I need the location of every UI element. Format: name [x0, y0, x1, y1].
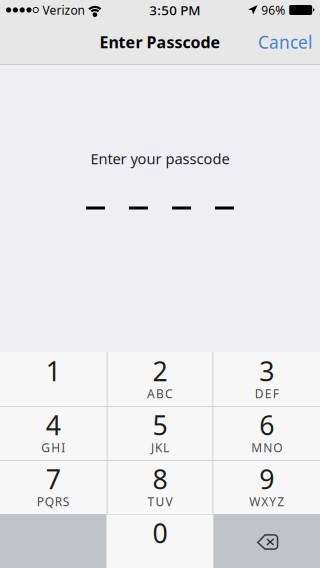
staticText: 3	[259, 353, 274, 389]
button[interactable]: 6	[213, 406, 320, 460]
button[interactable]: 1	[0, 352, 107, 406]
button[interactable]: 8	[107, 460, 213, 514]
staticText: Z	[277, 493, 284, 509]
staticText: N	[263, 439, 272, 455]
button[interactable]: 3	[213, 352, 320, 406]
staticText: R	[55, 493, 62, 509]
staticText: B	[156, 385, 164, 401]
staticText: C	[165, 385, 173, 401]
button[interactable]: 5	[107, 406, 213, 460]
staticText: 8	[152, 461, 167, 497]
staticText: J	[151, 439, 154, 455]
staticText: 9	[259, 461, 274, 497]
button[interactable]: 4	[0, 406, 107, 460]
staticText: K	[155, 439, 162, 455]
staticText: Q	[45, 493, 54, 509]
button[interactable]: 0	[107, 514, 213, 568]
staticText: T	[147, 493, 154, 509]
staticText: P	[37, 493, 44, 509]
staticText: 4	[46, 407, 61, 443]
button[interactable]: Cancel	[258, 20, 320, 64]
staticText: 6	[259, 407, 274, 443]
staticText: V	[165, 493, 172, 509]
staticText: O	[273, 439, 282, 455]
staticText: Enter Passcode	[99, 31, 220, 53]
staticText: M	[251, 439, 262, 455]
staticText: 3:50 PM	[149, 1, 200, 19]
staticText: Verizon	[42, 2, 84, 18]
staticText: 7	[46, 461, 61, 497]
staticText: Cancel	[258, 30, 312, 53]
staticText: D	[255, 385, 264, 401]
staticText: 0	[152, 515, 167, 551]
staticText: F	[273, 385, 279, 401]
staticText: 96%	[261, 2, 285, 18]
staticText: X	[261, 493, 268, 509]
staticText: E	[265, 385, 272, 401]
button[interactable]: 2	[107, 352, 213, 406]
staticText: W	[249, 493, 260, 509]
button[interactable]: Delete	[213, 514, 320, 568]
staticText: 5	[152, 407, 167, 443]
staticText: 1	[46, 353, 61, 389]
staticText: G	[41, 439, 50, 455]
staticText: S	[63, 493, 70, 509]
staticText: Enter your passcode	[90, 149, 229, 168]
staticText: I	[61, 439, 65, 455]
button[interactable]: 9	[213, 460, 320, 514]
staticText: A	[147, 385, 155, 401]
staticText: 2	[152, 353, 167, 389]
staticText: L	[163, 439, 169, 455]
staticText: H	[51, 439, 60, 455]
staticText: Y	[269, 493, 276, 509]
button[interactable]: 7	[0, 460, 107, 514]
staticText: U	[155, 493, 164, 509]
